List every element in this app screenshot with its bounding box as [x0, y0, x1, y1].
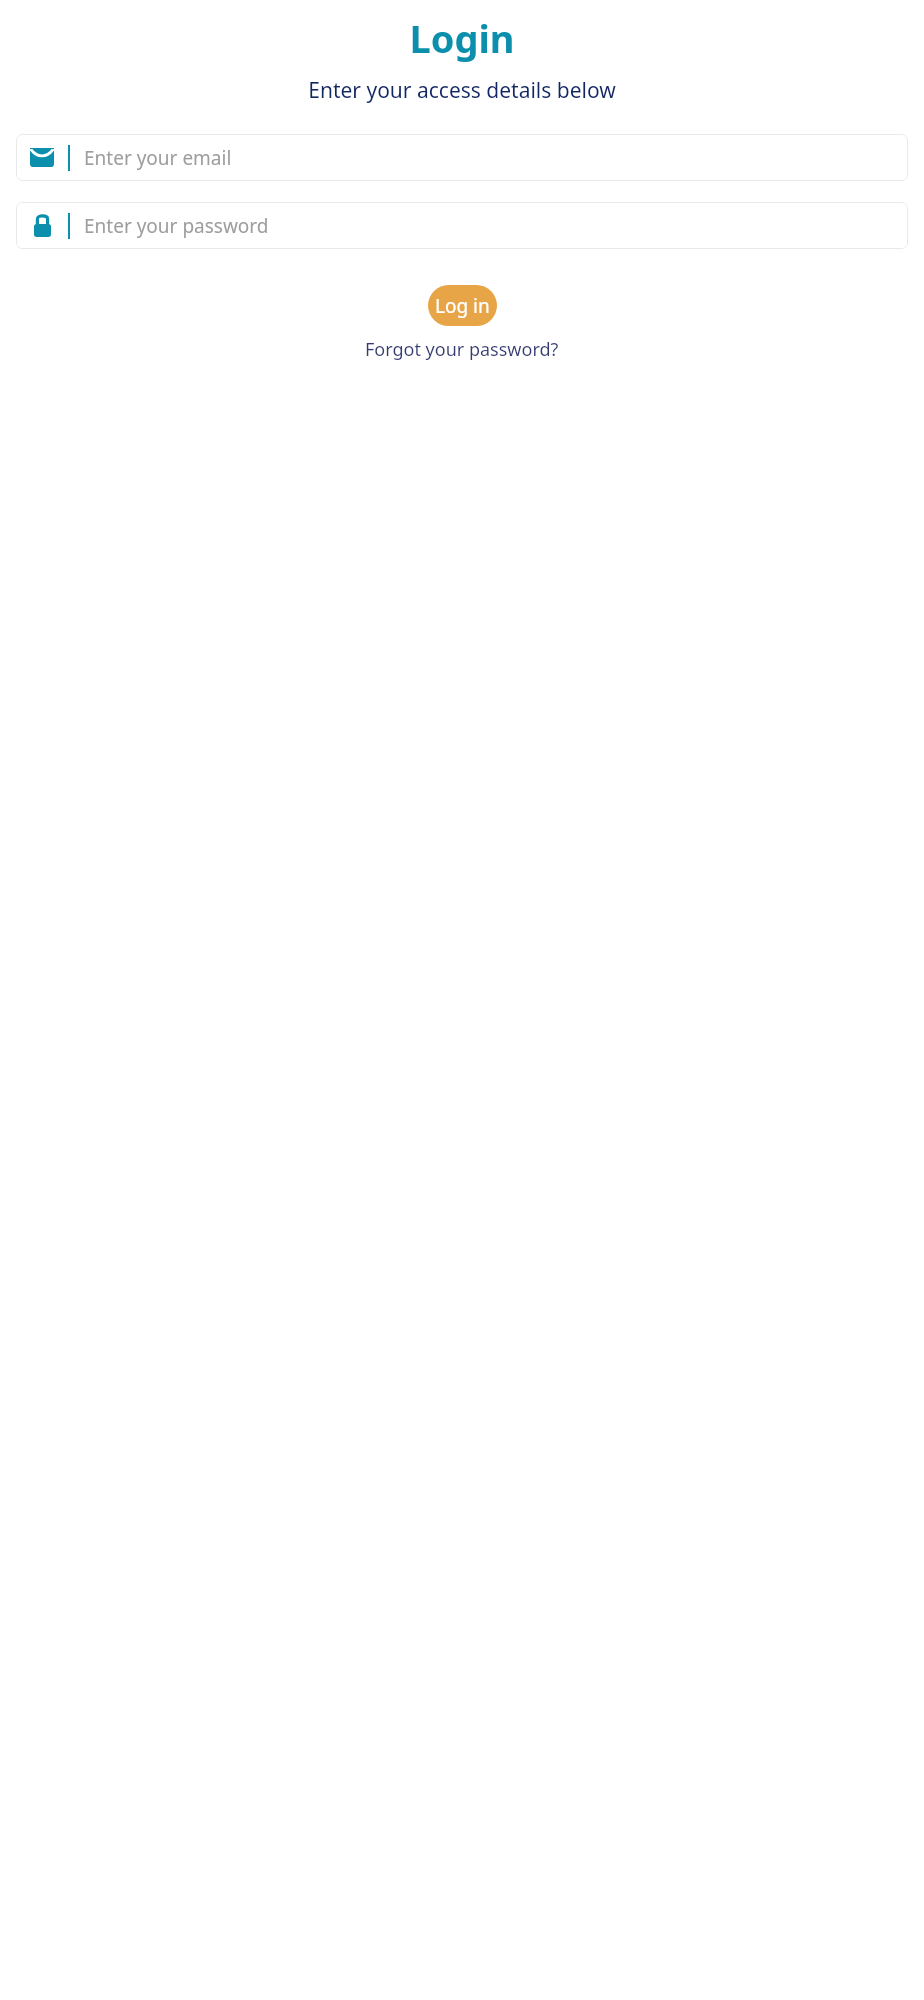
staticText: Login	[409, 12, 515, 64]
button[interactable]: Password	[16, 202, 908, 249]
staticText: Forgot your password?	[365, 337, 559, 362]
staticText: Log in	[435, 293, 490, 319]
button[interactable]: Log in	[428, 285, 497, 326]
staticText: Enter your access details below	[308, 76, 616, 105]
button[interactable]: Forgot your password?	[357, 334, 567, 365]
button[interactable]: Email	[16, 134, 908, 181]
other: Email	[16, 148, 68, 167]
staticText: Enter your password	[84, 213, 269, 239]
staticText: Enter your email	[84, 145, 232, 171]
other: Password	[16, 214, 68, 237]
